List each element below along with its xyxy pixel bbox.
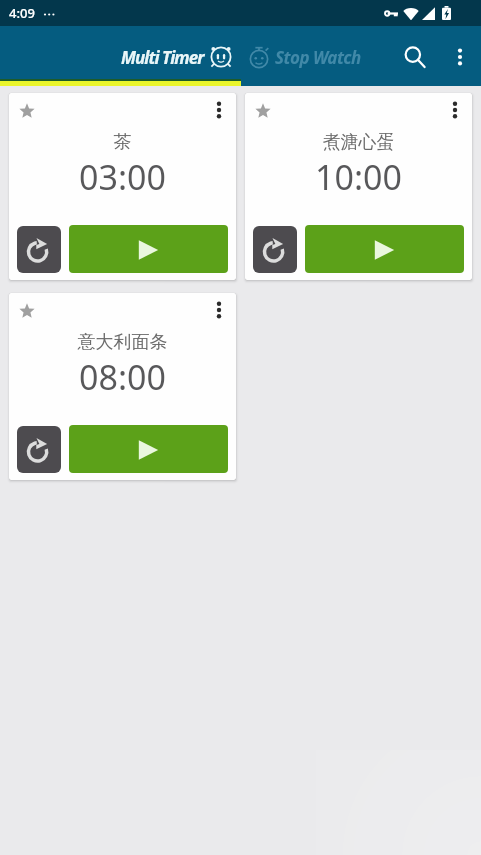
button[interactable]: Stop Watch bbox=[247, 45, 361, 69]
button[interactable]: Start bbox=[69, 225, 228, 273]
button[interactable]: Reset bbox=[253, 226, 297, 273]
staticText: 10:00 bbox=[245, 154, 472, 200]
staticText: 意大利面条 bbox=[9, 331, 236, 354]
staticText: Stop Watch bbox=[275, 46, 361, 69]
staticText: 03:00 bbox=[9, 154, 236, 200]
button[interactable]: Favorite bbox=[12, 96, 42, 126]
button[interactable]: Reset bbox=[17, 426, 61, 473]
staticText: 茶 bbox=[9, 131, 236, 154]
button[interactable]: Timer options bbox=[204, 95, 234, 125]
button[interactable]: More options bbox=[439, 32, 481, 82]
button[interactable]: Multi Timer bbox=[121, 45, 233, 69]
button[interactable]: Start bbox=[69, 425, 228, 473]
staticText: 煮溏心蛋 bbox=[245, 131, 472, 154]
staticText: Multi Timer bbox=[121, 46, 204, 69]
staticText: 4:09 bbox=[9, 4, 35, 22]
button[interactable]: Timer options bbox=[204, 295, 234, 325]
button[interactable]: Timer options bbox=[440, 95, 470, 125]
button[interactable]: Reset bbox=[17, 226, 61, 273]
button[interactable]: Favorite bbox=[9, 93, 236, 280]
button[interactable]: Favorite bbox=[9, 293, 236, 480]
button[interactable]: Start bbox=[305, 225, 464, 273]
button[interactable]: Favorite bbox=[248, 96, 278, 126]
button[interactable]: Search bbox=[391, 32, 439, 82]
staticText: 08:00 bbox=[9, 354, 236, 400]
button[interactable]: Favorite bbox=[12, 296, 42, 326]
button[interactable]: Favorite bbox=[245, 93, 472, 280]
